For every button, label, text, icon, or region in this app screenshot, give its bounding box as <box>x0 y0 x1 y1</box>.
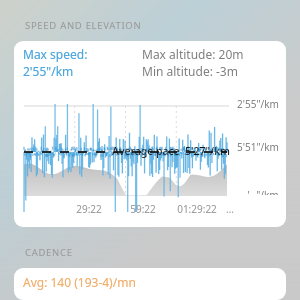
staticText: 2'55"/km <box>23 63 74 79</box>
staticText: 29:22 <box>62 202 116 216</box>
staticText: SPEED AND ELEVATION <box>25 19 142 32</box>
staticText: 2'55"/km <box>237 97 279 111</box>
staticText: --'--"/km <box>241 188 279 195</box>
staticText: ... <box>226 202 235 216</box>
staticText: Max altitude: 20m <box>142 46 244 62</box>
staticText: Avg: 140 (193-4)/mn <box>23 274 136 290</box>
staticText: Min altitude: -3m <box>142 63 238 79</box>
staticText: Average pace 5'27"/km <box>112 144 230 158</box>
button[interactable]: Avg: 140 (193-4)/mn <box>14 268 286 300</box>
staticText: 5'51"/km <box>237 140 279 154</box>
staticText: 01:29:22 <box>170 202 224 216</box>
staticText: Max speed: <box>23 46 88 62</box>
staticText: 59:22 <box>116 202 170 216</box>
staticText: CADENCE <box>25 246 73 259</box>
button[interactable]: Max speed: <box>14 41 286 227</box>
